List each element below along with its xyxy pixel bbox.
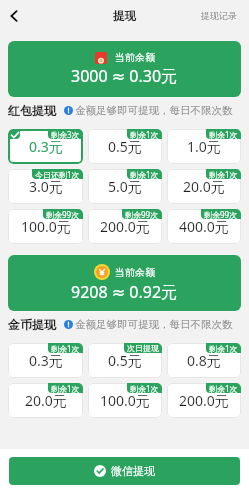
- staticText: 金币提现: [8, 317, 56, 332]
- button[interactable]: 100.0元: [88, 383, 162, 418]
- staticText: 3000 ≈ 0.30元: [71, 65, 178, 87]
- button[interactable]: 5.0元: [88, 169, 162, 204]
- button[interactable]: 3.0元: [8, 169, 83, 204]
- staticText: 提现记录: [201, 10, 237, 21]
- staticText: 3.0元: [29, 177, 63, 196]
- staticText: 0.3元: [29, 137, 63, 156]
- staticText: 剩余3次: [51, 129, 80, 139]
- staticText: 剩余1次: [209, 383, 238, 393]
- staticText: 0.8元: [187, 351, 221, 370]
- staticText: 剩余1次: [130, 129, 159, 139]
- staticText: 1.0元: [187, 137, 221, 156]
- staticText: 次日提现: [127, 343, 159, 353]
- staticText: 今日还剩1次: [35, 169, 80, 179]
- staticText: 剩余99次: [204, 209, 238, 219]
- staticText: 提现: [113, 9, 136, 23]
- staticText: 20.0元: [183, 177, 225, 196]
- button[interactable]: 400.0元: [167, 209, 241, 244]
- button[interactable]: 20.0元: [167, 169, 241, 204]
- button[interactable]: 200.0元: [167, 383, 241, 418]
- button[interactable]: 0.5元: [88, 129, 162, 164]
- button[interactable]: 当前余额: [8, 255, 241, 311]
- staticText: 剩余99次: [125, 209, 159, 219]
- button[interactable]: 100.0元: [8, 209, 83, 244]
- staticText: 当前余额: [115, 51, 155, 64]
- button[interactable]: 0.5元: [88, 343, 162, 378]
- button[interactable]: 0.3元: [8, 129, 83, 164]
- button[interactable]: 0.3元: [8, 343, 83, 378]
- staticText: 剩余1次: [51, 343, 80, 353]
- staticText: 剩余1次: [209, 129, 238, 139]
- staticText: 金额足够即可提现，每日不限次数: [75, 318, 233, 331]
- button[interactable]: Back: [0, 2, 28, 30]
- staticText: 100.0元: [21, 217, 71, 236]
- staticText: 9208 ≈ 0.92元: [71, 281, 178, 303]
- staticText: 剩余1次: [51, 383, 80, 393]
- staticText: 剩余1次: [130, 383, 159, 393]
- staticText: 400.0元: [179, 217, 229, 236]
- staticText: 5.0元: [108, 177, 142, 196]
- staticText: 金额足够即可提现，每日不限次数: [75, 104, 233, 117]
- staticText: 0.3元: [29, 351, 63, 370]
- staticText: 微信提现: [111, 464, 155, 478]
- staticText: 红包提现: [8, 103, 56, 118]
- staticText: 剩余1次: [209, 169, 238, 179]
- staticText: 剩余1次: [209, 343, 238, 353]
- staticText: 200.0元: [100, 217, 150, 236]
- button[interactable]: 20.0元: [8, 383, 83, 418]
- button[interactable]: 1.0元: [167, 129, 241, 164]
- staticText: 0.5元: [108, 351, 142, 370]
- button[interactable]: 200.0元: [88, 209, 162, 244]
- staticText: 剩余1次: [130, 169, 159, 179]
- staticText: 20.0元: [25, 391, 67, 410]
- staticText: 200.0元: [179, 391, 229, 410]
- button[interactable]: 提现记录: [201, 10, 237, 21]
- staticText: 100.0元: [100, 391, 150, 410]
- button[interactable]: 当前余额: [8, 41, 241, 97]
- staticText: 0.5元: [108, 137, 142, 156]
- staticText: 当前余额: [115, 266, 155, 279]
- button[interactable]: 微信提现: [9, 457, 240, 485]
- button[interactable]: 0.8元: [167, 343, 241, 378]
- staticText: 剩余99次: [46, 209, 80, 219]
